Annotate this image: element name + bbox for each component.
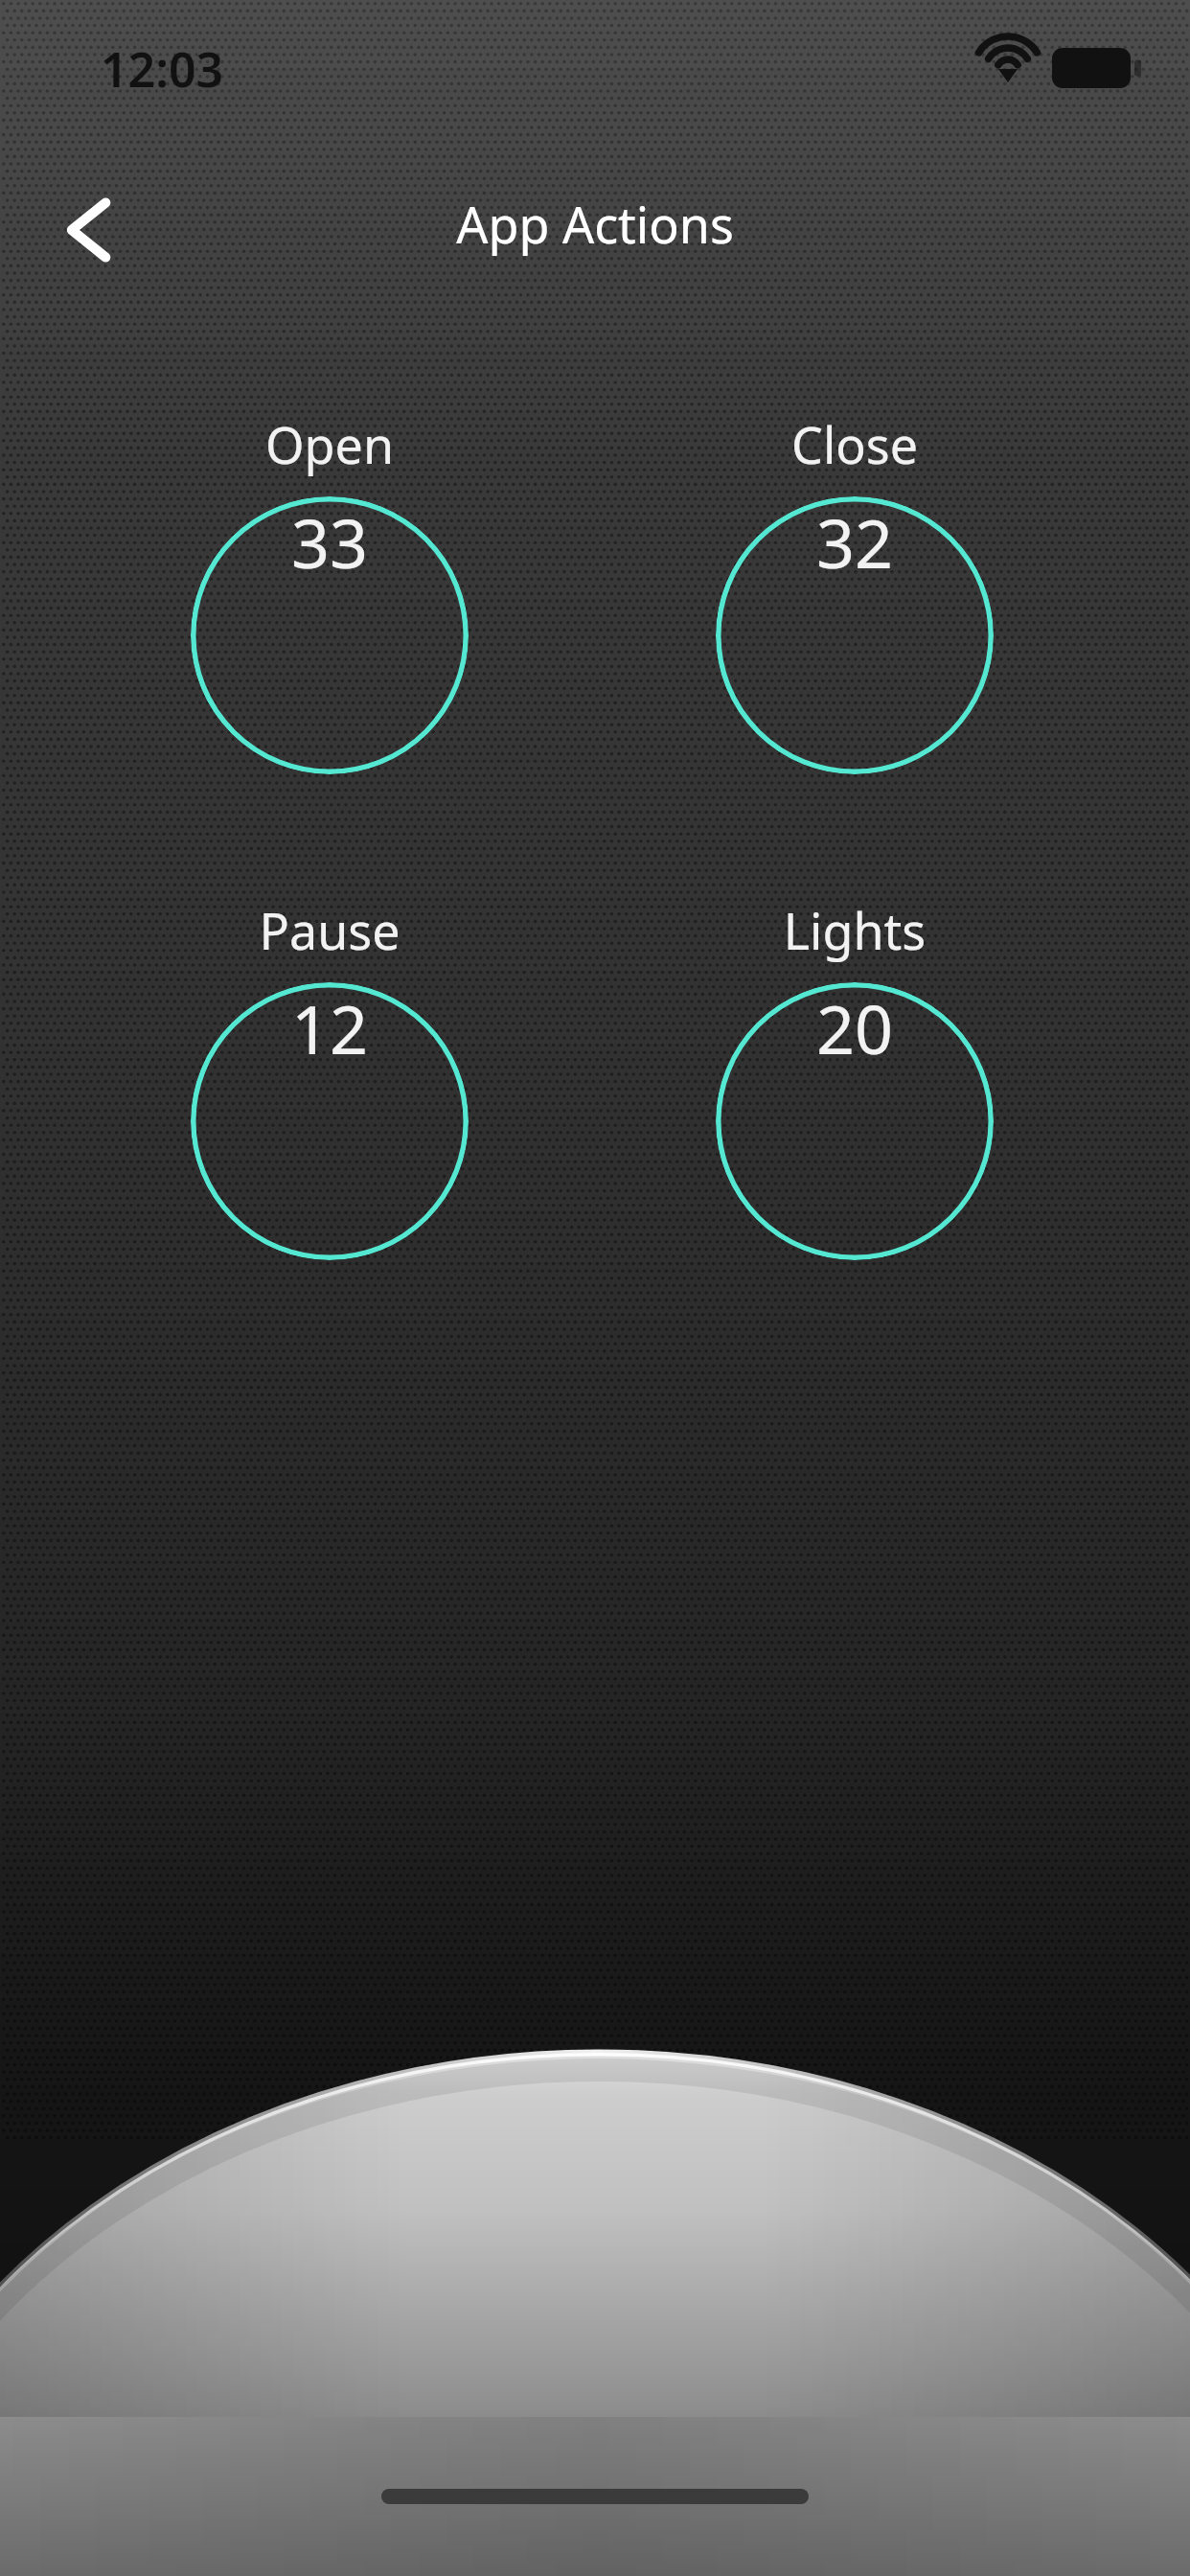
staticText: 12 (191, 982, 469, 1260)
button[interactable]: Back (21, 171, 155, 289)
staticText: App Actions (0, 190, 1190, 259)
staticText: 12:03 (101, 36, 369, 98)
staticText: 33 (191, 496, 469, 774)
button[interactable]: 12 (191, 982, 469, 1260)
staticText: Lights (596, 896, 1113, 965)
button[interactable]: 20 (716, 982, 994, 1260)
button[interactable]: 32 (716, 496, 994, 774)
staticText: 20 (716, 982, 994, 1260)
staticText: Close (596, 410, 1113, 479)
staticText: Open (71, 410, 588, 479)
staticText: Pause (71, 896, 588, 965)
button[interactable]: 33 (191, 496, 469, 774)
staticText: 32 (716, 496, 994, 774)
